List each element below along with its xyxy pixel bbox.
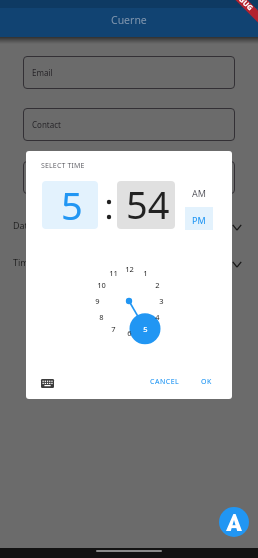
other: Debug banner <box>210 0 258 48</box>
staticText: 8 <box>99 312 104 322</box>
staticText: AM <box>192 187 206 199</box>
button[interactable]: AM <box>185 183 213 207</box>
button[interactable]: Debug actions <box>219 507 249 537</box>
button[interactable]: Time <box>13 250 243 274</box>
button[interactable]: Contact <box>23 108 235 141</box>
staticText: Contact <box>32 119 61 130</box>
staticText: SELECT TIME <box>41 161 85 171</box>
staticText: Cuerne <box>111 13 147 27</box>
button[interactable]: 54 <box>117 181 175 229</box>
staticText: OK <box>201 377 212 387</box>
button[interactable]: CANCEL <box>144 372 186 392</box>
staticText: 54 <box>126 181 170 226</box>
staticText: 5 <box>143 324 148 334</box>
staticText: Email <box>32 67 53 78</box>
staticText: 9 <box>95 296 100 306</box>
staticText: 10 <box>97 280 106 290</box>
staticText: 6 <box>127 328 132 338</box>
button[interactable]: PM <box>185 207 213 230</box>
button[interactable]: Date <box>13 213 243 237</box>
staticText: 11 <box>109 268 118 278</box>
staticText: 4 <box>155 312 160 322</box>
staticText: Time <box>13 256 34 268</box>
staticText: Date <box>13 219 33 231</box>
button[interactable]: Switch to text input <box>41 379 54 388</box>
staticText: CANCEL <box>150 377 180 387</box>
staticText: DEBUG <box>231 0 255 13</box>
button[interactable]: Address <box>23 161 235 194</box>
staticText: 12 <box>125 264 134 274</box>
staticText: Address <box>32 172 63 183</box>
staticText: 2 <box>155 280 160 290</box>
button[interactable]: 5 <box>42 181 98 229</box>
staticText: 7 <box>111 324 116 334</box>
button[interactable]: OK <box>195 372 218 392</box>
staticText: PM <box>192 214 206 226</box>
button[interactable]: Email <box>23 56 235 89</box>
staticText: 5 <box>61 181 83 227</box>
staticText: 1 <box>143 268 148 278</box>
staticText: 3 <box>159 296 164 306</box>
